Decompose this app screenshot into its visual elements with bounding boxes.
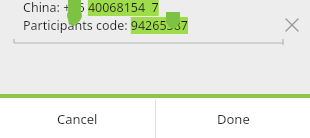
button[interactable]: Clear [279, 12, 305, 38]
button[interactable]: Cancel [0, 98, 155, 138]
staticText: China: +86 40068154 7 [23, 0, 159, 16]
staticText: Done [217, 110, 250, 128]
button[interactable]: China: +86 40068154 7 [23, 0, 278, 33]
button[interactable]: Done [156, 98, 310, 138]
staticText: Cancel [57, 110, 98, 128]
staticText: Participants code: 94265387 [23, 17, 188, 34]
